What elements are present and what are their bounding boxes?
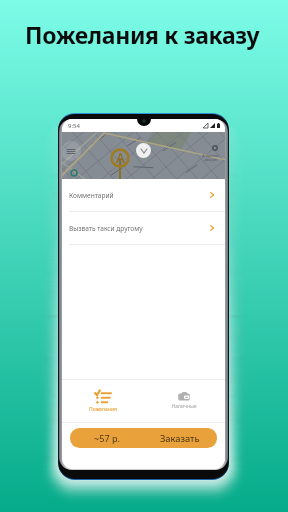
staticText: Вызвать такси другому (69, 224, 143, 233)
button[interactable]: Expand (136, 143, 151, 158)
staticText: Андреевс дворов (202, 153, 219, 162)
staticText: A (116, 149, 125, 167)
button[interactable]: Пожелания (62, 380, 143, 422)
button[interactable]: Вызвать такси другому (62, 212, 225, 244)
staticText: Заказать (160, 432, 200, 445)
button[interactable]: Комментарий (62, 179, 225, 211)
button[interactable]: ~57 р. (70, 428, 217, 448)
staticText: Пожелания (89, 406, 117, 413)
button[interactable]: Menu (62, 141, 81, 161)
staticText: Комментарий (69, 191, 114, 200)
staticText: Наличные (171, 403, 197, 410)
staticText: Пожелания к заказу (25, 19, 260, 50)
button[interactable]: Наличные (143, 380, 225, 422)
staticText: ~57 р. (94, 432, 120, 444)
staticText: 9:54 (68, 122, 80, 130)
